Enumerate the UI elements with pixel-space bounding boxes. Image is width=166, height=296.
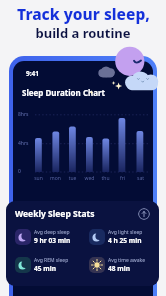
button[interactable]: Avg light sleep (89, 229, 159, 245)
button[interactable]: Avg REM sleep (15, 257, 87, 273)
staticText: Track your sleep, (17, 3, 150, 24)
staticText: build a routine (35, 24, 131, 42)
staticText: 4 h 25 min (108, 236, 142, 245)
staticText: mon (47, 175, 64, 182)
button[interactable]: More info (138, 208, 150, 220)
staticText: 0 (18, 168, 21, 175)
staticText: 48 min (108, 264, 130, 273)
staticText: fri (114, 175, 131, 182)
staticText: sat (132, 175, 149, 182)
button[interactable]: Avg time awake (89, 257, 159, 273)
staticText: thu (97, 175, 114, 182)
staticText: 8hrs (18, 111, 29, 118)
staticText: 45 min (34, 264, 56, 273)
staticText: Avg time awake (108, 257, 146, 264)
staticText: sun (30, 175, 47, 182)
button[interactable]: Avg deep sleep (15, 229, 87, 245)
staticText: Sleep Duration Chart (22, 87, 106, 98)
staticText: wed (81, 175, 98, 182)
staticText: 9:41 (26, 69, 39, 78)
staticText: tue (64, 175, 81, 182)
staticText: 4hrs (18, 140, 29, 147)
staticText: Weekly Sleep Stats (15, 208, 95, 220)
staticText: 9 hr 03 min (34, 236, 71, 245)
staticText: Avg REM sleep (34, 257, 69, 264)
staticText: Avg light sleep (108, 229, 143, 236)
staticText: Avg deep sleep (34, 229, 70, 236)
